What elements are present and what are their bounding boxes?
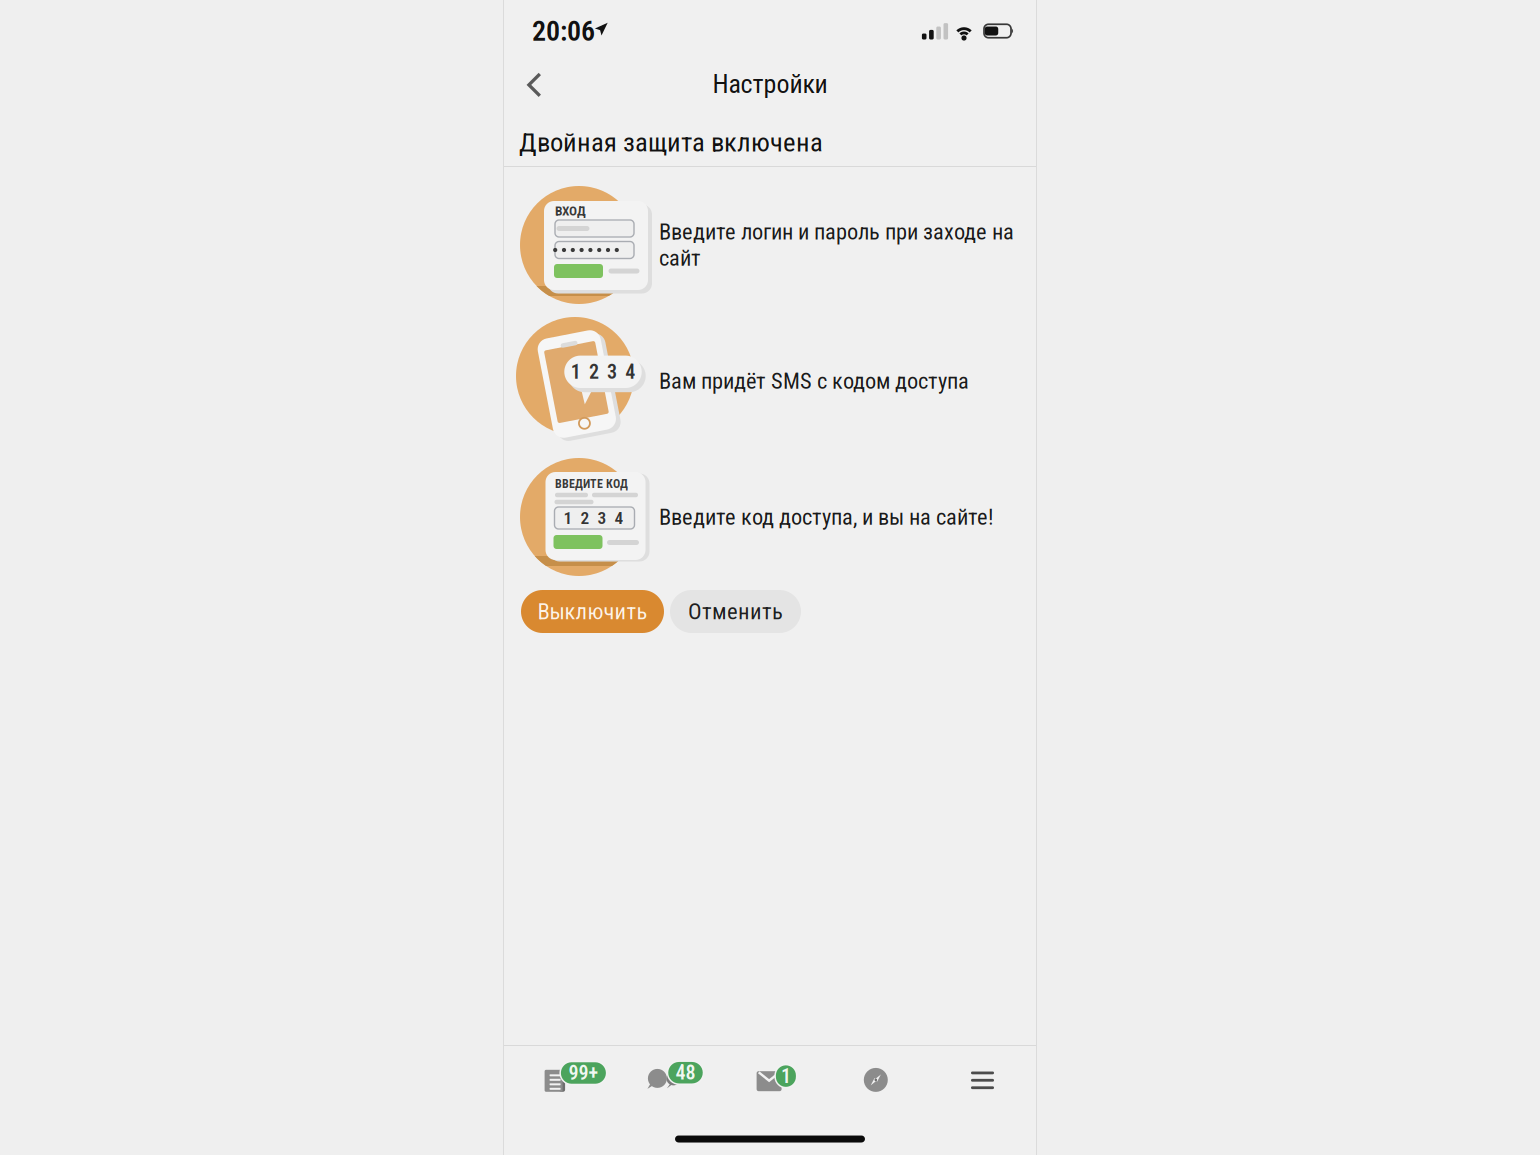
staticText: Настройки: [712, 69, 827, 99]
staticText: 48: [675, 1061, 695, 1084]
staticText: Двойная защита включена: [519, 127, 823, 158]
staticText: Введите логин и пароль при заходе на сай…: [659, 219, 1014, 271]
button[interactable]: Новости: [522, 1048, 616, 1104]
staticText: 1: [781, 1064, 791, 1088]
staticText: ВХОД: [555, 203, 586, 219]
staticText: 20:06: [532, 15, 595, 48]
button[interactable]: Меню: [956, 1054, 1008, 1106]
staticText: 99+: [568, 1061, 598, 1085]
button[interactable]: Назад: [511, 62, 557, 108]
button[interactable]: Отменить: [670, 590, 801, 633]
staticText: Вам придёт SMS с кодом доступа: [659, 368, 969, 394]
button[interactable]: Выключить: [521, 590, 664, 633]
staticText: Введите код доступа, и вы на сайте!: [659, 504, 994, 530]
staticText: Выключить: [537, 598, 647, 625]
button[interactable]: Почта: [742, 1048, 812, 1104]
staticText: 1 2 3 4: [571, 360, 635, 383]
button[interactable]: Обзор: [850, 1054, 902, 1106]
staticText: Отменить: [688, 598, 783, 625]
button[interactable]: Комментарии: [634, 1048, 714, 1104]
staticText: ВВЕДИТЕ КОД: [555, 477, 628, 491]
staticText: 1 2 3 4: [564, 508, 624, 528]
